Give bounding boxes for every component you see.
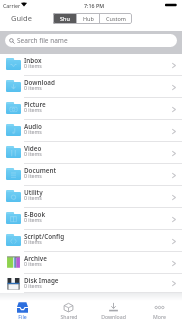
staticText: More xyxy=(153,313,166,320)
staticText: Custom xyxy=(106,15,126,22)
staticText: 0 items xyxy=(24,194,42,201)
button[interactable]: Shared xyxy=(46,293,91,323)
button[interactable]: Utility xyxy=(0,186,182,208)
button[interactable]: Search file name xyxy=(5,34,177,47)
staticText: Picture xyxy=(24,100,46,109)
staticText: 0 items xyxy=(24,282,42,289)
button[interactable]: File xyxy=(0,293,45,323)
staticText: Disk Image xyxy=(24,276,59,285)
staticText: Search file name xyxy=(17,36,68,45)
staticText: 0 items xyxy=(24,238,42,245)
staticText: Archive xyxy=(24,254,47,263)
staticText: Download xyxy=(101,313,126,320)
button[interactable]: Download xyxy=(91,293,136,323)
button[interactable]: E-Book xyxy=(0,208,182,230)
button[interactable]: Disk Image xyxy=(0,274,182,293)
button[interactable]: Download xyxy=(0,76,182,98)
staticText: Guide xyxy=(11,13,32,23)
staticText: Hub xyxy=(83,15,94,22)
button[interactable]: More xyxy=(137,293,182,323)
staticText: 0 items xyxy=(24,106,42,113)
staticText: Audio xyxy=(24,122,42,131)
staticText: Shu xyxy=(60,15,70,22)
staticText: Shared xyxy=(60,313,78,320)
staticText: 0 items xyxy=(24,84,42,91)
staticText: 0 items xyxy=(24,260,42,267)
button[interactable]: Script/Config xyxy=(0,230,182,252)
staticText: E-Book xyxy=(24,210,46,219)
staticText: Carrier xyxy=(3,2,21,9)
staticText: File xyxy=(18,313,27,320)
button[interactable]: Hub xyxy=(77,13,99,24)
staticText: Download xyxy=(24,78,55,87)
staticText: 0 items xyxy=(24,128,42,135)
staticText: 7:16 PM xyxy=(84,2,105,9)
button[interactable]: Document xyxy=(0,164,182,186)
staticText: 0 items xyxy=(24,216,42,223)
button[interactable]: Audio xyxy=(0,120,182,142)
staticText: Utility xyxy=(24,188,43,197)
staticText: Script/Config xyxy=(24,232,65,241)
staticText: 0 items xyxy=(24,172,42,179)
staticText: Document xyxy=(24,166,56,175)
button[interactable]: Shu xyxy=(53,13,76,24)
button[interactable]: Custom xyxy=(100,13,132,24)
staticText: 0 items xyxy=(24,150,42,157)
button[interactable]: Video xyxy=(0,142,182,164)
staticText: Inbox xyxy=(24,56,42,65)
button[interactable]: Picture xyxy=(0,98,182,120)
staticText: Video xyxy=(24,144,42,153)
button[interactable]: Archive xyxy=(0,252,182,274)
staticText: 0 items xyxy=(24,62,42,69)
button[interactable]: Inbox xyxy=(0,54,182,76)
